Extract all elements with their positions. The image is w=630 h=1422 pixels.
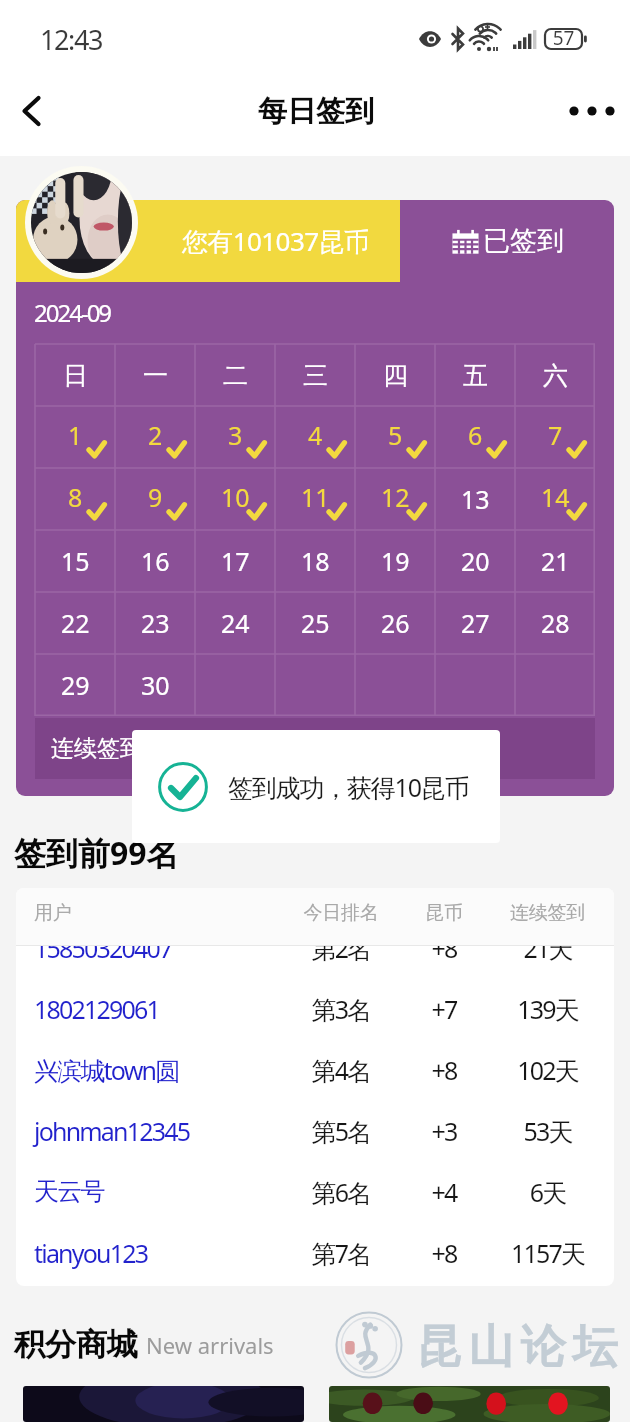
button[interactable]: 22 — [35, 592, 115, 654]
button[interactable]: 2 — [115, 406, 195, 468]
button[interactable]: 13 — [435, 468, 515, 530]
button[interactable] — [23, 1386, 304, 1422]
button[interactable]: 16 — [115, 530, 195, 592]
staticText: 26 — [381, 606, 410, 640]
staticText: 6天 — [481, 1175, 614, 1209]
staticText: 139天 — [481, 992, 614, 1026]
staticText: 9 — [148, 480, 163, 514]
button[interactable]: 1802129061 — [16, 978, 614, 1039]
staticText: +8 — [407, 1236, 481, 1270]
button[interactable]: tianyou123 — [16, 1222, 614, 1283]
button[interactable]: 17 — [195, 530, 275, 592]
staticText: 1157天 — [481, 1236, 614, 1270]
staticText: 29 — [61, 668, 90, 702]
staticText: 2024-09 — [34, 296, 111, 329]
button[interactable]: 24 — [195, 592, 275, 654]
staticText: 57 — [547, 25, 580, 51]
staticText: 8 — [68, 480, 83, 514]
button[interactable]: 天云号 — [16, 1161, 614, 1222]
button[interactable]: 4 — [275, 406, 355, 468]
button[interactable] — [329, 1386, 610, 1422]
button[interactable]: 27 — [435, 592, 515, 654]
button[interactable]: 14 — [515, 468, 595, 530]
button[interactable]: 25 — [275, 592, 355, 654]
button[interactable]: 15850320407 — [16, 917, 614, 978]
staticText: 4 — [308, 418, 323, 452]
button[interactable]: 12 — [355, 468, 435, 530]
staticText: +4 — [407, 1175, 481, 1209]
staticText: 兴滨城town圆 — [34, 1053, 275, 1087]
staticText: 28 — [541, 606, 570, 640]
staticText: 18 — [301, 544, 330, 578]
staticText: 21 — [541, 544, 570, 578]
staticText: 14 — [541, 480, 570, 514]
staticText: 一 — [143, 360, 168, 391]
button[interactable] — [515, 654, 595, 716]
staticText: 27 — [461, 606, 490, 640]
button[interactable]: 3 — [195, 406, 275, 468]
staticText: 积分商城 — [14, 1325, 138, 1364]
staticText: 第3名 — [275, 992, 407, 1026]
button[interactable]: 10 — [195, 468, 275, 530]
staticText: 二 — [223, 360, 248, 391]
button[interactable]: 15 — [35, 530, 115, 592]
button[interactable]: 8 — [35, 468, 115, 530]
button[interactable]: 23 — [115, 592, 195, 654]
staticText: 每日签到 — [258, 93, 374, 130]
staticText: 7 — [548, 418, 563, 452]
staticText: 您有101037昆币 — [182, 223, 370, 259]
staticText: 12:43 — [40, 21, 103, 58]
button[interactable]: 9 — [115, 468, 195, 530]
button[interactable]: 已签到 — [400, 200, 614, 282]
staticText: 11 — [301, 480, 330, 514]
button[interactable] — [435, 654, 515, 716]
button[interactable]: Back — [0, 78, 70, 156]
button[interactable]: 11 — [275, 468, 355, 530]
staticText: 已签到 — [483, 224, 564, 258]
staticText: +8 — [407, 1053, 481, 1087]
button[interactable]: 1 — [35, 406, 115, 468]
button[interactable]: johnman12345 — [16, 1100, 614, 1161]
button[interactable] — [195, 654, 275, 716]
staticText: 21天 — [481, 931, 614, 965]
staticText: 13 — [461, 482, 490, 516]
staticText: 30 — [141, 668, 170, 702]
staticText: 五 — [463, 360, 488, 391]
staticText: 22 — [61, 606, 90, 640]
staticText: 连续签到7天 — [51, 731, 180, 762]
staticText: 六 — [543, 360, 568, 391]
button[interactable]: 5 — [355, 406, 435, 468]
staticText: 今日排名 — [275, 901, 407, 925]
button[interactable]: More options — [550, 78, 630, 156]
button[interactable]: 兴滨城town圆 — [16, 1039, 614, 1100]
button[interactable]: 18 — [275, 530, 355, 592]
button[interactable]: 20 — [435, 530, 515, 592]
staticText: 2 — [148, 418, 163, 452]
button[interactable]: 19 — [355, 530, 435, 592]
staticText: tianyou123 — [34, 1236, 275, 1270]
staticText: 第6名 — [275, 1175, 407, 1209]
staticText: 5 — [388, 418, 403, 452]
staticText: 三 — [303, 360, 328, 391]
button[interactable]: 29 — [35, 654, 115, 716]
button[interactable]: 30 — [115, 654, 195, 716]
staticText: 3 — [228, 418, 243, 452]
button[interactable]: 7 — [515, 406, 595, 468]
staticText: New arrivals — [146, 1330, 274, 1360]
button[interactable]: 6 — [435, 406, 515, 468]
staticText: 16 — [141, 544, 170, 578]
button[interactable]: 28 — [515, 592, 595, 654]
staticText: 12 — [381, 480, 410, 514]
button[interactable]: 21 — [515, 530, 595, 592]
staticText: 1802129061 — [34, 992, 275, 1026]
button[interactable] — [275, 654, 355, 716]
button[interactable] — [355, 654, 435, 716]
staticText: 签到前99名 — [14, 831, 179, 875]
staticText: 第5名 — [275, 1114, 407, 1148]
staticText: 15850320407 — [34, 931, 275, 965]
staticText: 用户 — [34, 901, 275, 925]
staticText: 签到成功，获得10昆币 — [228, 770, 498, 804]
staticText: 53天 — [481, 1114, 614, 1148]
staticText: 昆币 — [407, 901, 481, 925]
button[interactable]: 26 — [355, 592, 435, 654]
